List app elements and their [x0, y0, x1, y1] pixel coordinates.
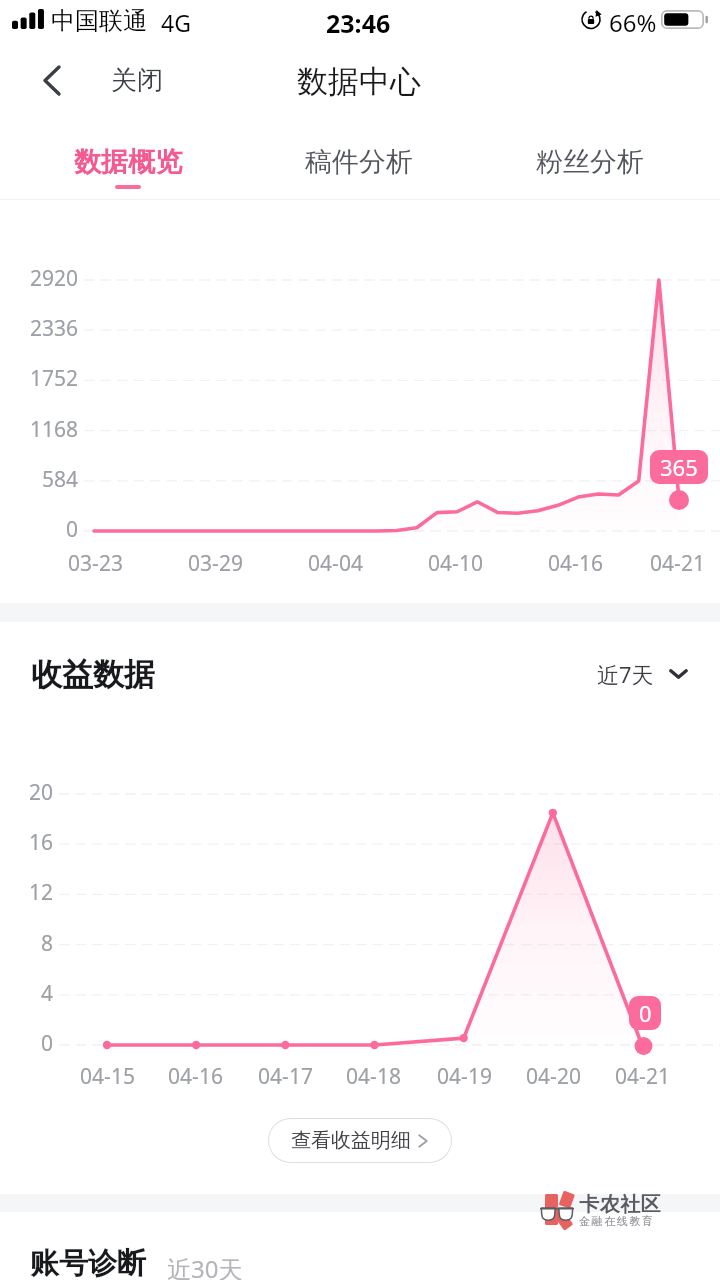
staticText: 关闭	[111, 64, 163, 97]
staticText: 66%	[609, 6, 657, 39]
staticText: 近30天	[167, 1252, 243, 1280]
staticText: 04-21	[615, 1062, 670, 1091]
staticText: 2336	[29, 314, 78, 346]
staticText: 数据中心	[297, 62, 421, 101]
staticText: 03-29	[188, 549, 243, 578]
staticText: 04-21	[650, 549, 705, 578]
button[interactable]: 关闭	[94, 52, 180, 108]
staticText: 04-10	[428, 549, 483, 578]
staticText: 04-04	[308, 549, 363, 578]
button[interactable]: 数据概览	[48, 120, 208, 202]
staticText: 收益数据	[31, 655, 155, 694]
staticText: 粉丝分析	[536, 145, 644, 179]
staticText: 8	[40, 929, 53, 961]
staticText: 16	[28, 828, 53, 860]
staticText: 2920	[29, 264, 78, 296]
button[interactable]: 稿件分析	[279, 120, 439, 202]
staticText: 数据概览	[74, 145, 182, 179]
staticText: 稿件分析	[305, 145, 413, 179]
staticText: 584	[41, 465, 78, 497]
button[interactable]: 查看收益明细	[269, 1119, 451, 1162]
staticText: 0	[65, 515, 78, 547]
staticText: 4	[40, 979, 53, 1011]
staticText: 04-17	[258, 1062, 313, 1091]
staticText: 04-20	[526, 1062, 581, 1091]
staticText: 0	[639, 998, 652, 1028]
staticText: 近7天	[597, 659, 654, 689]
staticText: 中国联通	[51, 6, 147, 36]
staticText: 04-16	[548, 549, 603, 578]
staticText: 04-19	[437, 1062, 492, 1091]
staticText: 1168	[29, 415, 78, 447]
staticText: 查看收益明细	[291, 1128, 411, 1153]
staticText: 04-18	[346, 1062, 401, 1091]
staticText: 20	[28, 778, 53, 810]
staticText: 卡农社区	[579, 1192, 661, 1217]
staticText: 04-16	[168, 1062, 223, 1091]
staticText: 03-23	[68, 549, 123, 578]
staticText: 1752	[29, 364, 78, 396]
staticText: 金融在线教育	[579, 1214, 655, 1228]
staticText: 0	[40, 1029, 53, 1061]
staticText: 账号诊断	[30, 1245, 146, 1280]
button[interactable]: 粉丝分析	[510, 120, 670, 202]
staticText: 4G	[161, 7, 191, 38]
staticText: 23:46	[326, 6, 391, 40]
button[interactable]: 近7天	[597, 652, 688, 696]
button[interactable]: Back	[22, 50, 82, 110]
staticText: 12	[28, 878, 53, 910]
staticText: 365	[660, 452, 698, 482]
staticText: 04-15	[80, 1062, 135, 1091]
